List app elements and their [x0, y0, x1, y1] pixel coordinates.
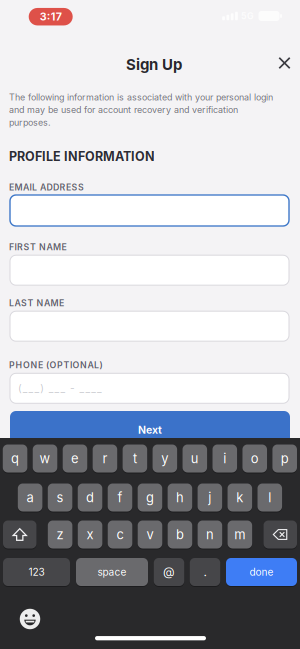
button[interactable]: i: [212, 444, 237, 472]
staticText: p: [281, 451, 289, 466]
staticText: x: [87, 527, 94, 542]
button[interactable]: w: [33, 444, 57, 472]
button[interactable]: First name: [10, 255, 289, 285]
staticText: Sign Up: [126, 55, 182, 74]
staticText: t: [133, 451, 137, 466]
staticText: y: [161, 451, 168, 466]
staticText: r: [102, 451, 107, 466]
staticText: f: [117, 490, 122, 505]
button[interactable]: g: [138, 483, 162, 511]
button[interactable]: j: [198, 483, 222, 511]
staticText: b: [176, 527, 184, 542]
button[interactable]: Emoji: [19, 608, 41, 630]
staticText: space: [97, 566, 126, 578]
staticText: @: [163, 565, 175, 579]
button[interactable]: Delete: [263, 520, 297, 548]
staticText: o: [251, 451, 259, 466]
staticText: h: [176, 490, 184, 505]
button[interactable]: Next: [10, 411, 290, 449]
staticText: .: [203, 565, 206, 579]
button[interactable]: q: [3, 444, 27, 472]
button[interactable]: s: [48, 483, 72, 511]
button[interactable]: Email address: [10, 195, 289, 226]
button[interactable]: space: [76, 558, 148, 586]
button[interactable]: c: [108, 520, 132, 548]
button[interactable]: u: [182, 444, 207, 472]
button[interactable]: y: [153, 444, 177, 472]
staticText: 3:17: [40, 10, 62, 23]
staticText: s: [57, 490, 64, 505]
staticText: i: [223, 451, 226, 466]
staticText: 123: [28, 566, 44, 578]
staticText: m: [234, 527, 245, 542]
button[interactable]: e: [63, 444, 87, 472]
button[interactable]: t: [123, 444, 147, 472]
staticText: q: [11, 451, 19, 466]
staticText: (___) ___ - ____: [18, 382, 102, 394]
staticText: PROFILE INFORMATION: [9, 149, 155, 164]
button[interactable]: d: [78, 483, 102, 511]
button[interactable]: r: [93, 444, 117, 472]
button[interactable]: 123: [3, 558, 70, 586]
staticText: EMAIL ADDRESS: [9, 182, 84, 193]
button[interactable]: l: [257, 483, 282, 511]
staticText: a: [27, 490, 34, 505]
staticText: d: [86, 490, 94, 505]
button[interactable]: done: [226, 558, 297, 586]
staticText: PHONE (OPTIONAL): [9, 360, 102, 370]
staticText: z: [57, 527, 64, 542]
button[interactable]: o: [242, 444, 267, 472]
staticText: g: [146, 490, 154, 505]
staticText: j: [208, 490, 211, 505]
button[interactable]: Shift: [3, 520, 36, 548]
staticText: u: [191, 451, 199, 466]
button[interactable]: m: [228, 520, 252, 548]
staticText: FIRST NAME: [9, 242, 66, 252]
staticText: Next: [138, 424, 162, 436]
button[interactable]: @: [154, 558, 184, 586]
staticText: n: [206, 527, 214, 542]
staticText: w: [39, 451, 50, 466]
button[interactable]: k: [227, 483, 252, 511]
button[interactable]: b: [168, 520, 192, 548]
button[interactable]: x: [78, 520, 102, 548]
button[interactable]: v: [138, 520, 162, 548]
staticText: done: [249, 566, 273, 578]
staticText: and may be used for account recovery and…: [9, 104, 238, 115]
staticText: c: [116, 527, 123, 542]
staticText: The following information is associated …: [9, 92, 273, 103]
button[interactable]: n: [198, 520, 222, 548]
button[interactable]: h: [168, 483, 192, 511]
button[interactable]: Phone (optional): [10, 373, 289, 403]
staticText: e: [71, 451, 79, 466]
staticText: 5G: [241, 11, 254, 21]
button[interactable]: f: [108, 483, 132, 511]
staticText: purposes.: [9, 117, 51, 128]
button[interactable]: Close: [273, 52, 296, 74]
button[interactable]: .: [190, 558, 220, 586]
staticText: v: [146, 527, 153, 542]
button[interactable]: p: [272, 444, 297, 472]
button[interactable]: a: [18, 483, 42, 511]
staticText: k: [236, 490, 243, 505]
staticText: LAST NAME: [9, 298, 64, 308]
button[interactable]: Last name: [10, 311, 289, 341]
staticText: l: [268, 490, 271, 505]
button[interactable]: 3:17: [29, 8, 73, 25]
button[interactable]: z: [48, 520, 72, 548]
